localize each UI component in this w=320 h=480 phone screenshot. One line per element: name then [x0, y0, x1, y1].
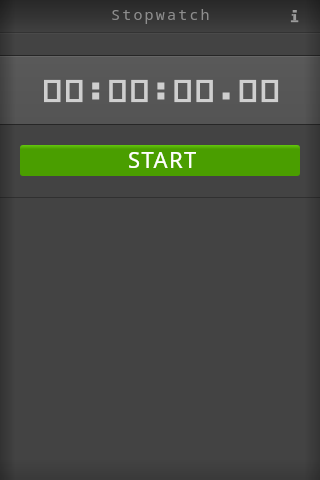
button[interactable]: About — [276, 0, 320, 32]
staticText: Stopwatch — [111, 4, 212, 24]
staticText: START — [128, 145, 198, 174]
button[interactable]: START — [20, 145, 300, 176]
